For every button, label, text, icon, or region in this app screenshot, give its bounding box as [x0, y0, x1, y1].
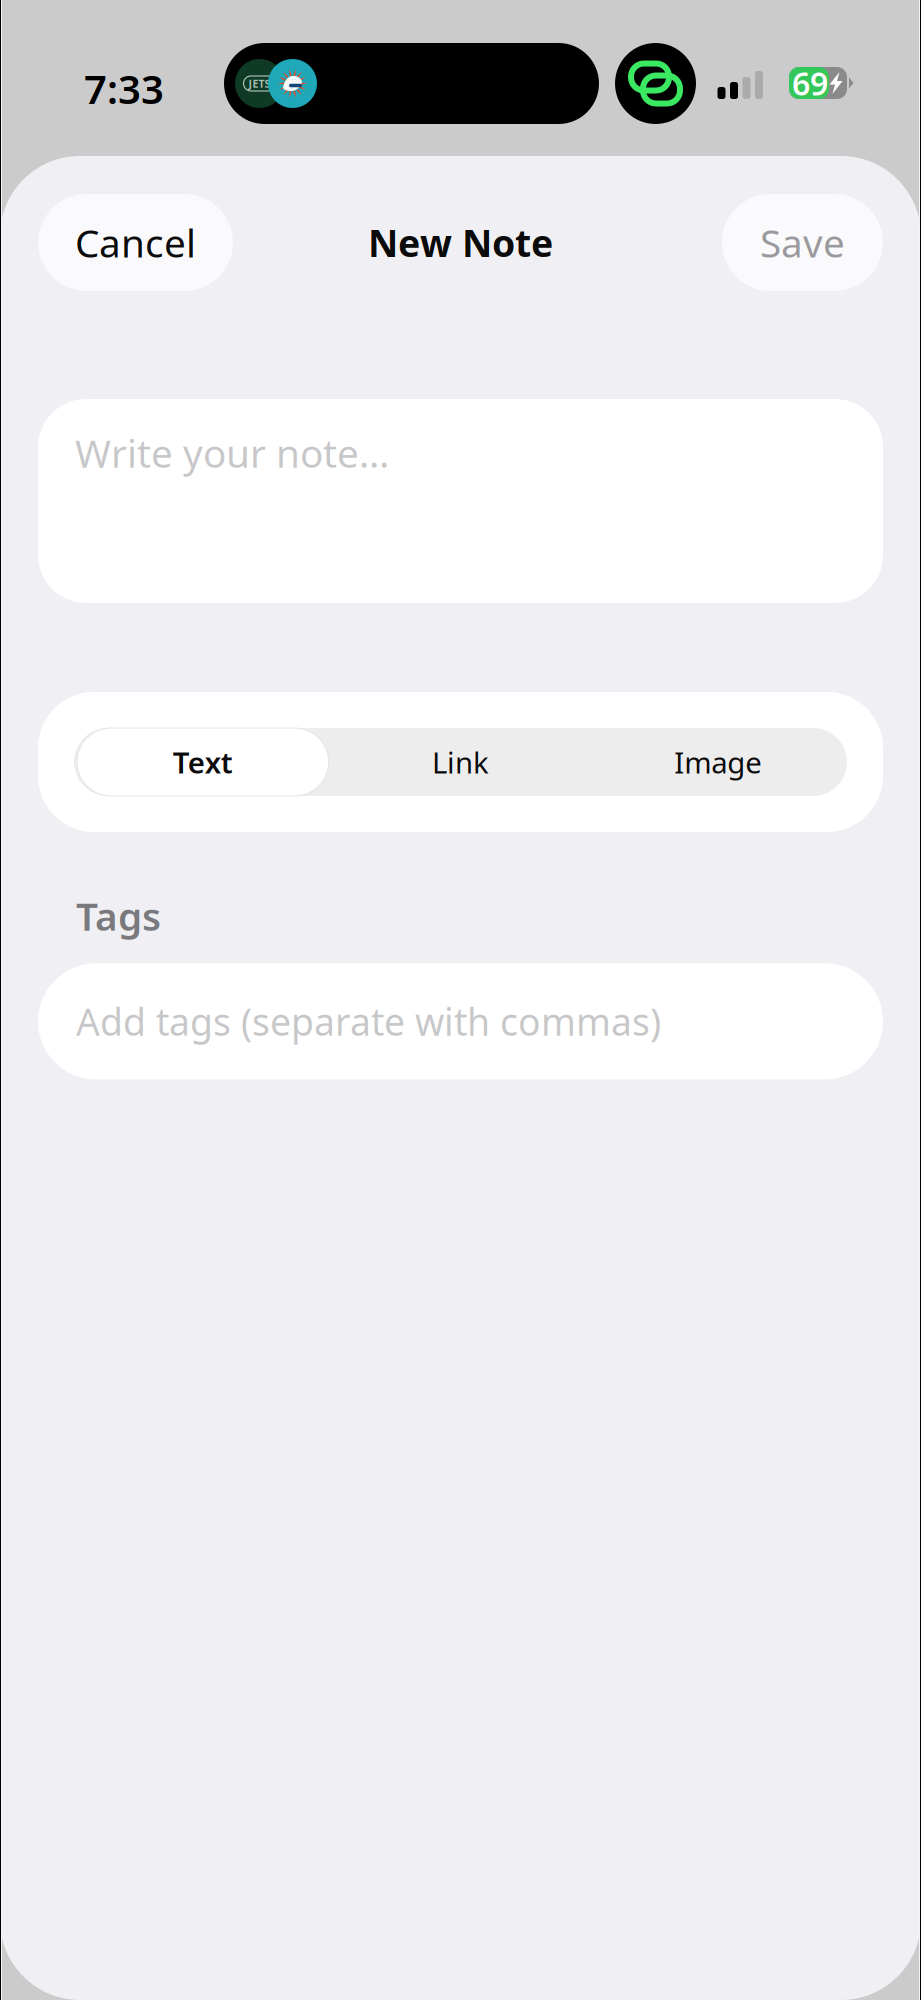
- staticText: New Note: [368, 218, 553, 267]
- staticText: Cancel: [75, 217, 196, 268]
- button[interactable]: Image: [589, 728, 847, 796]
- staticText: Tags: [76, 890, 161, 941]
- button[interactable]: Save: [722, 194, 883, 291]
- staticText: 69: [792, 62, 828, 104]
- staticText: Image: [674, 742, 762, 781]
- staticText: Link: [432, 742, 489, 781]
- staticText: JETS: [248, 76, 270, 91]
- button[interactable]: Cancel: [38, 194, 233, 291]
- staticText: 7:33: [84, 62, 164, 115]
- staticText: Save: [760, 217, 845, 268]
- button[interactable]: Text: [74, 728, 332, 796]
- staticText: Add tags (separate with commas): [76, 997, 661, 1046]
- staticText: Write your note...: [75, 427, 389, 478]
- button[interactable]: Link: [332, 728, 589, 796]
- staticText: Text: [173, 742, 233, 781]
